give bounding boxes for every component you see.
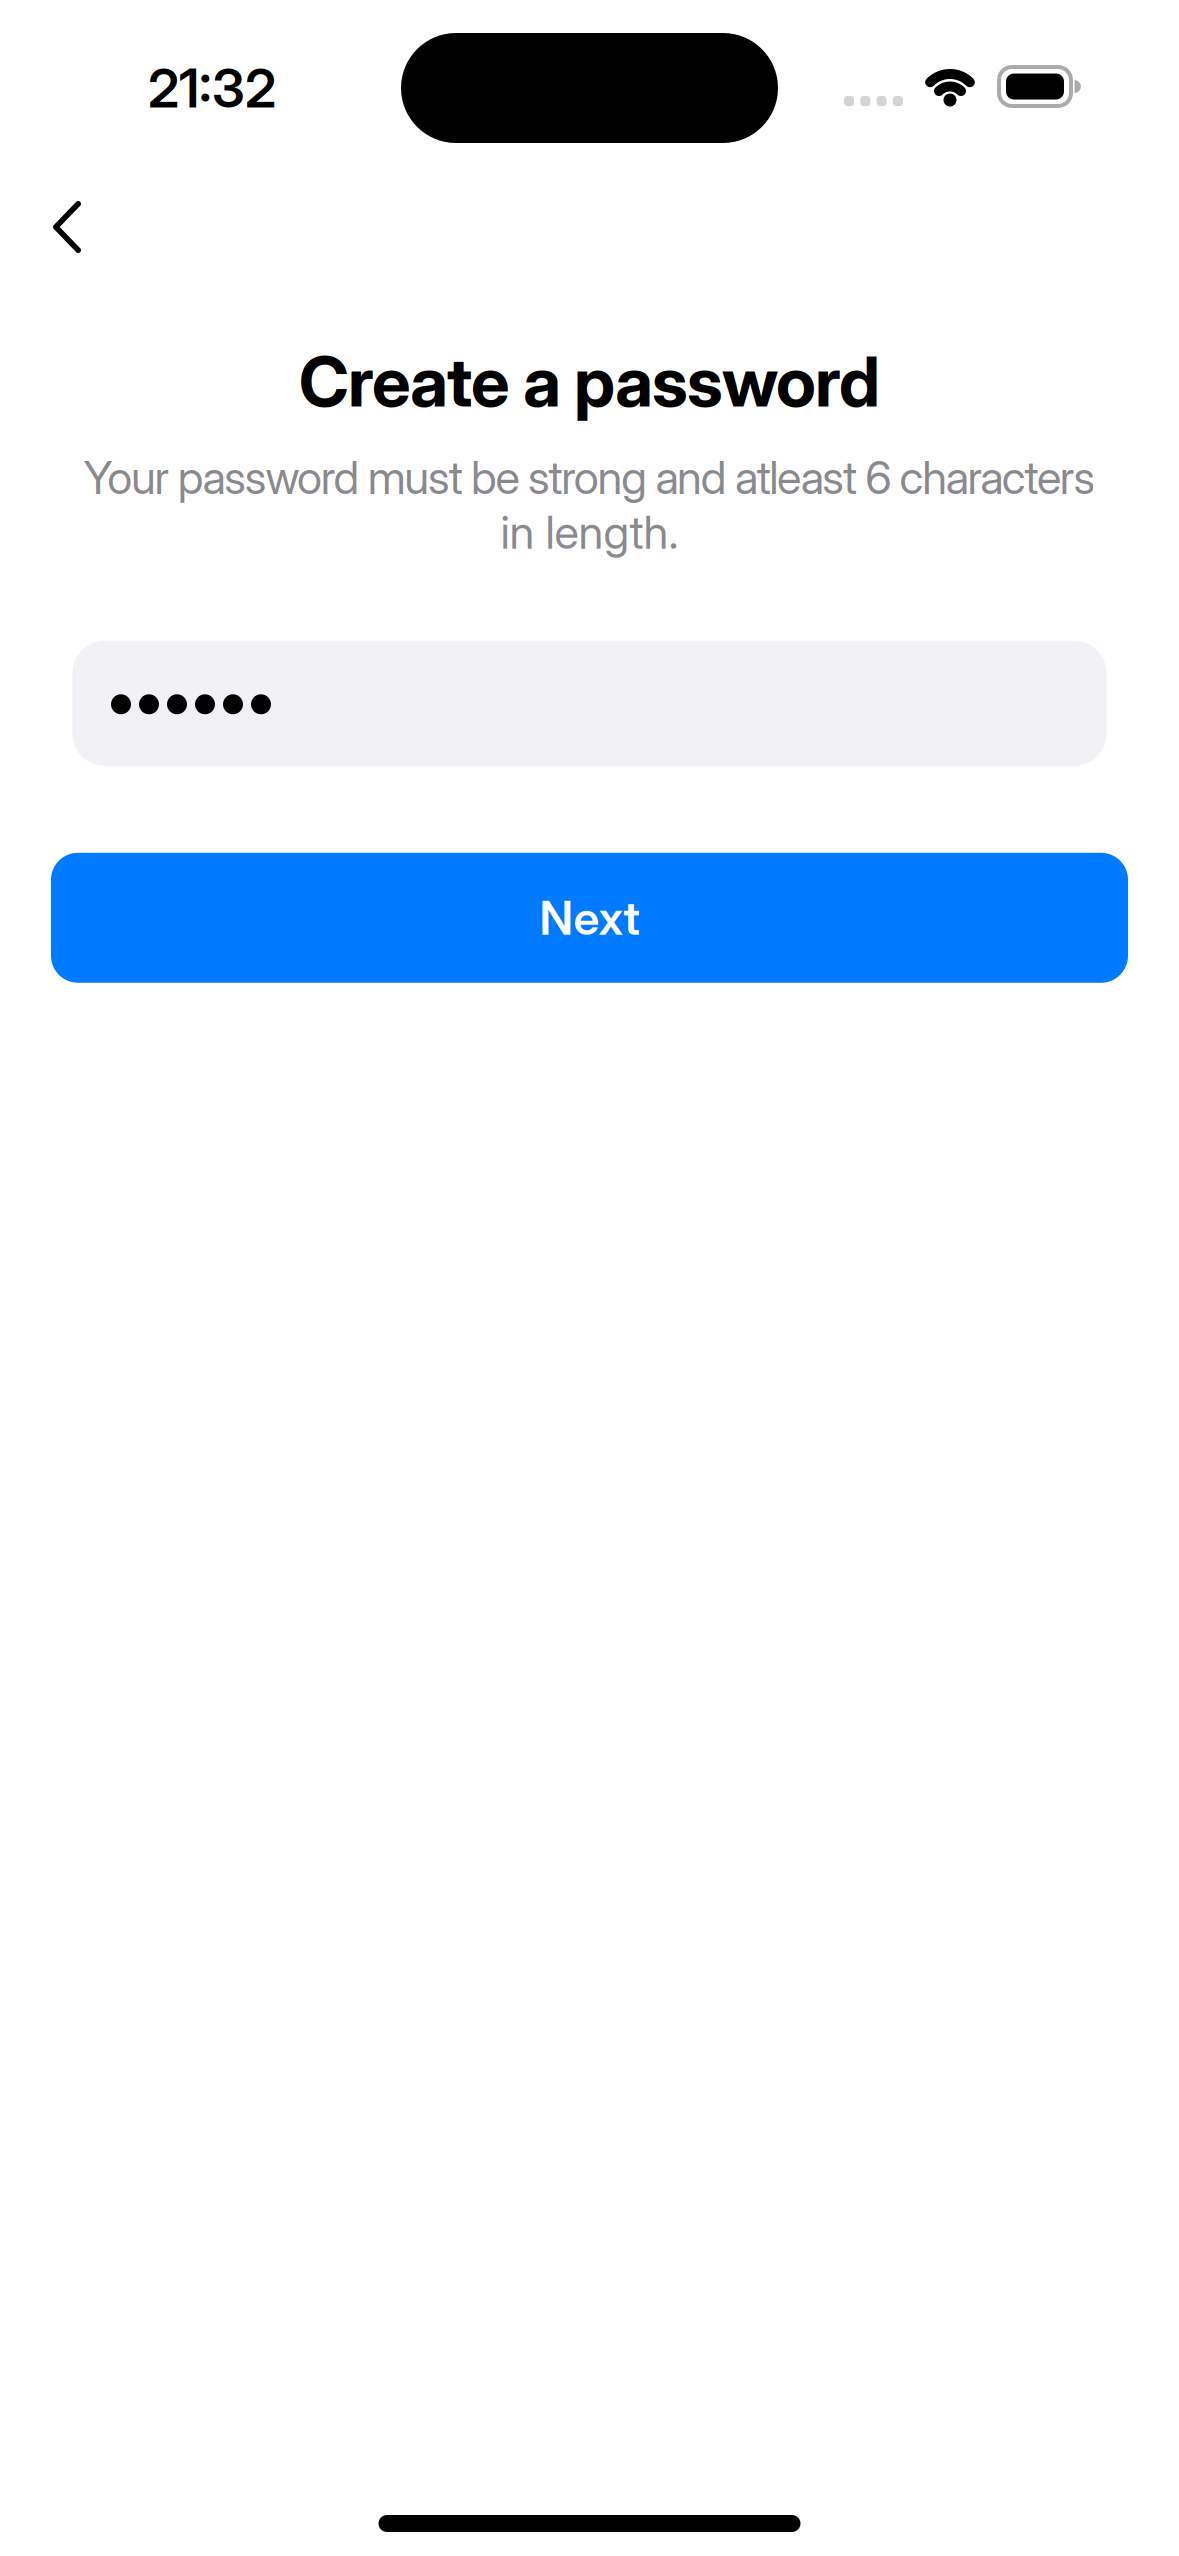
staticText: Next bbox=[539, 890, 639, 946]
button[interactable]: Next bbox=[51, 853, 1128, 983]
button[interactable] bbox=[72, 641, 1106, 766]
staticText: Your password must be strong and atleast… bbox=[84, 450, 1095, 505]
staticText: Create a password bbox=[299, 340, 880, 423]
button[interactable] bbox=[0, 191, 111, 263]
staticText: in length. bbox=[500, 505, 678, 560]
staticText: 21:32 bbox=[148, 56, 276, 120]
